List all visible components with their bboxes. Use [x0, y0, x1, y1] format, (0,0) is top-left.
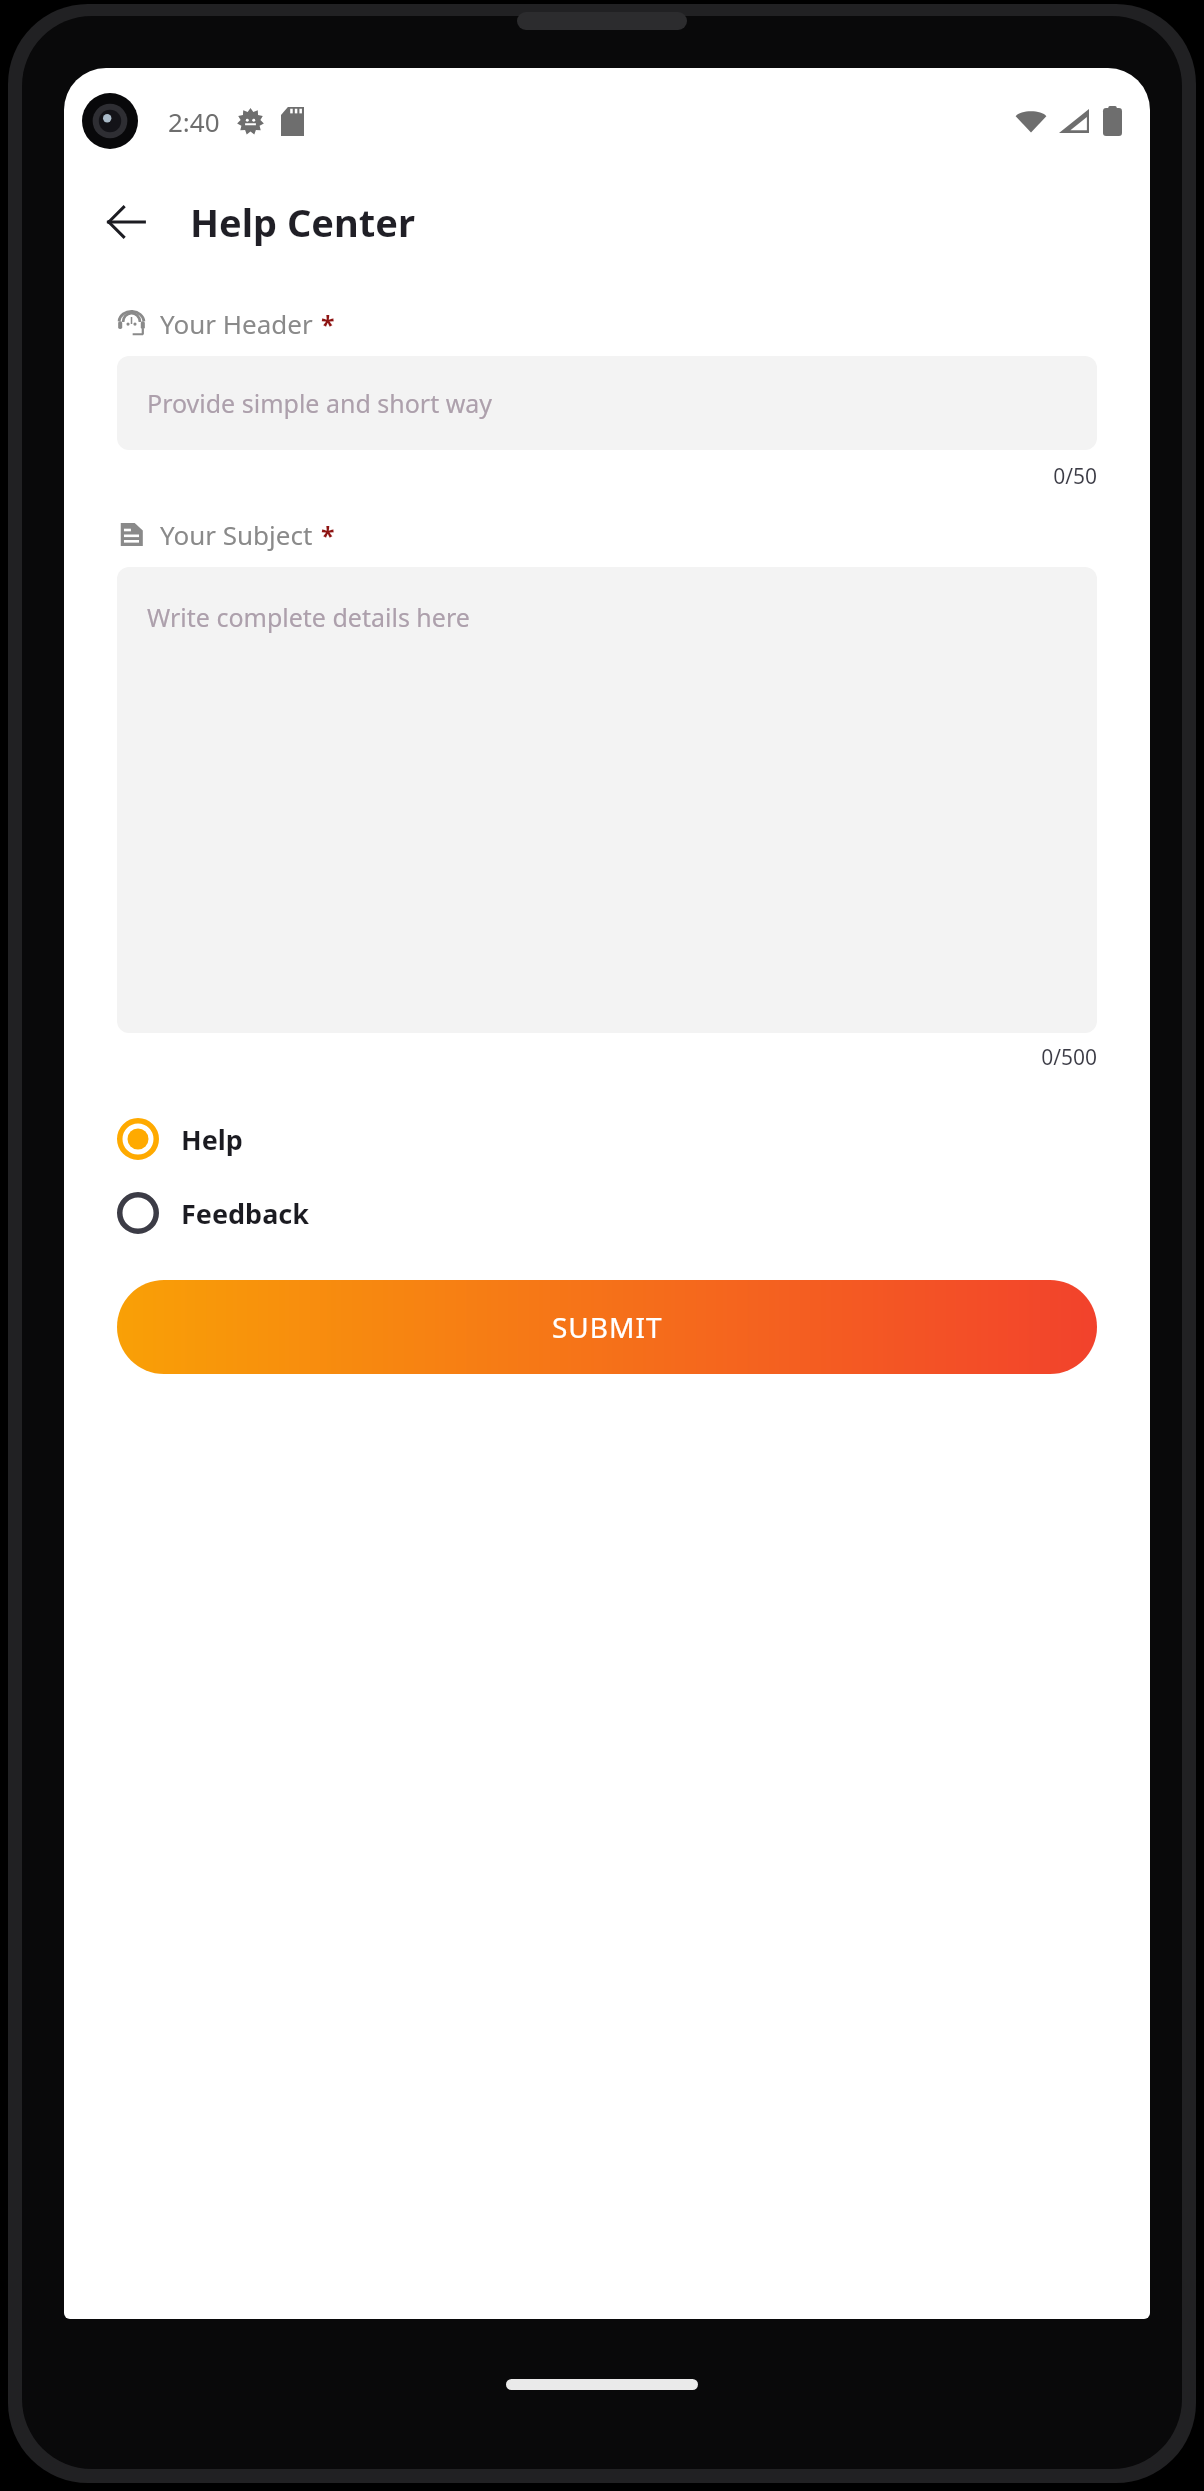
- staticText: Your Header: [160, 306, 313, 341]
- staticText: Help Center: [190, 196, 415, 248]
- staticText: *: [321, 518, 335, 552]
- staticText: Help: [181, 1121, 243, 1158]
- button[interactable]: Feedback: [117, 1188, 1097, 1238]
- button[interactable]: Help: [117, 1114, 1097, 1164]
- staticText: 2:40: [168, 104, 220, 139]
- staticText: Provide simple and short way: [147, 386, 493, 420]
- staticText: Write complete details here: [147, 600, 470, 634]
- staticText: SUBMIT: [552, 1308, 663, 1346]
- button[interactable]: SUBMIT: [117, 1280, 1097, 1374]
- staticText: 0/500: [117, 1043, 1097, 1072]
- button[interactable]: Provide simple and short way: [117, 356, 1097, 450]
- staticText: 0/50: [117, 462, 1097, 491]
- staticText: Feedback: [181, 1195, 310, 1232]
- staticText: Your Subject: [160, 517, 313, 552]
- staticText: *: [321, 307, 335, 341]
- button[interactable]: Write complete details here: [117, 567, 1097, 1033]
- button[interactable]: Back: [88, 184, 164, 260]
